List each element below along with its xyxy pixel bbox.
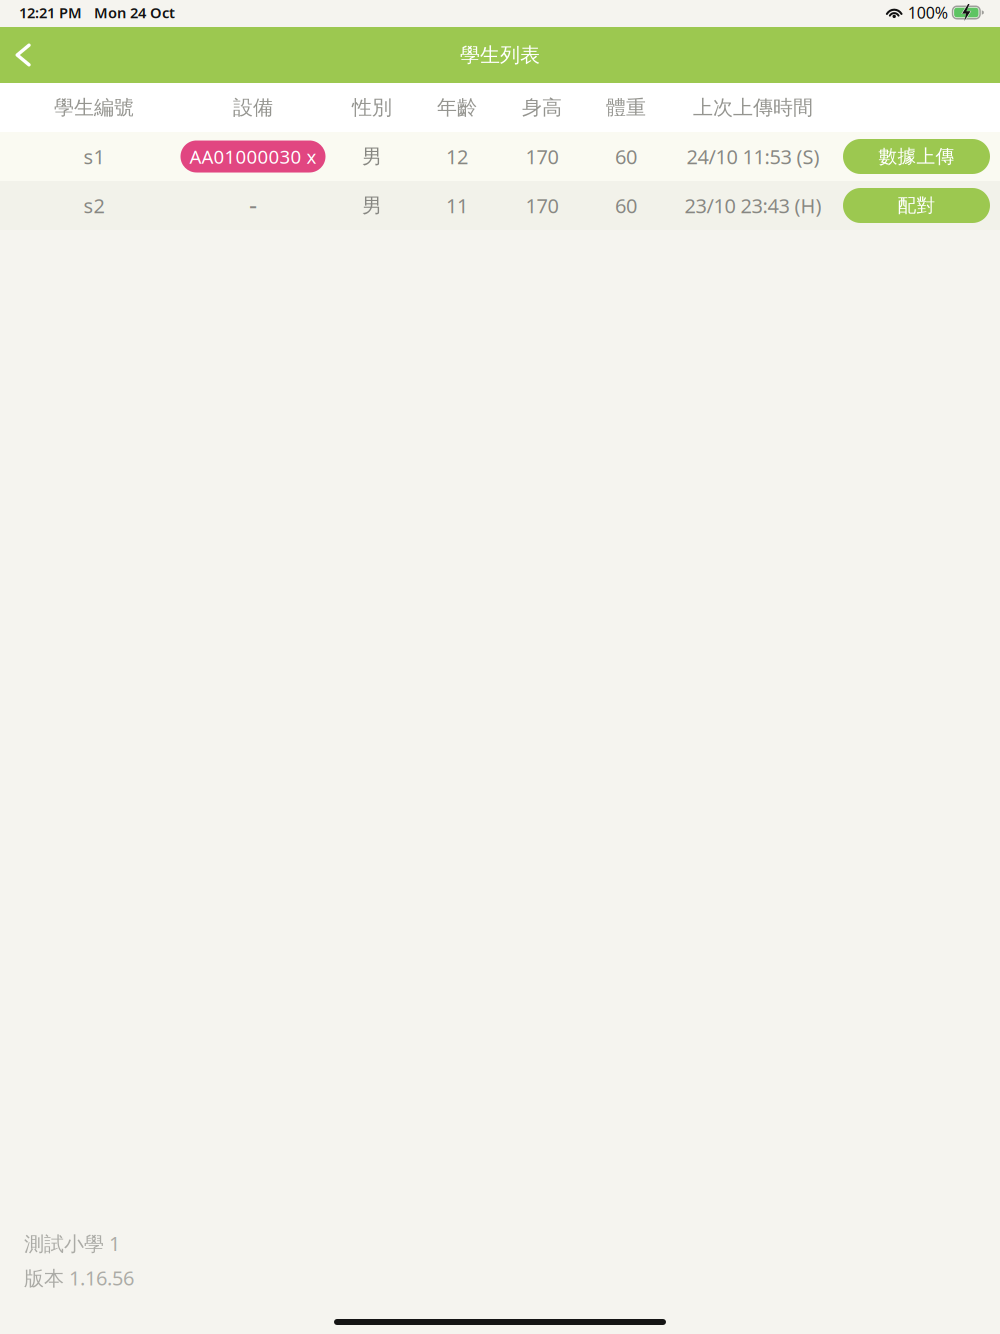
button[interactable]: Back xyxy=(0,27,46,83)
staticText: 23/10 23:43 (H) xyxy=(684,192,821,219)
button[interactable]: 配對 xyxy=(843,188,990,223)
staticText: 版本 1.16.56 xyxy=(24,1264,134,1291)
button[interactable]: AA01000030 x xyxy=(180,140,325,172)
staticText: 170 xyxy=(525,143,558,170)
staticText: 年齡 xyxy=(437,95,477,120)
staticText: - xyxy=(249,188,257,221)
staticText: 性別 xyxy=(352,95,392,120)
staticText: 身高 xyxy=(522,95,562,120)
staticText: s2 xyxy=(83,192,104,219)
staticText: AA01000030 x xyxy=(189,144,316,169)
staticText: 12:21 PM xyxy=(19,3,82,22)
staticText: 配對 xyxy=(897,194,935,217)
staticText: 男 xyxy=(362,144,382,169)
staticText: 學生列表 xyxy=(460,43,540,67)
staticText: 100% xyxy=(908,2,948,23)
button[interactable]: 數據上傳 xyxy=(843,139,990,174)
staticText: 上次上傳時間 xyxy=(693,95,813,120)
staticText: 11 xyxy=(446,192,468,219)
staticText: 60 xyxy=(615,143,637,170)
staticText: 12 xyxy=(446,143,468,170)
staticText: 24/10 11:53 (S) xyxy=(686,143,819,170)
staticText: 60 xyxy=(615,192,637,219)
staticText: 設備 xyxy=(233,95,273,120)
staticText: s1 xyxy=(83,143,104,170)
staticText: 體重 xyxy=(606,95,646,120)
staticText: 學生編號 xyxy=(54,95,134,120)
staticText: Mon 24 Oct xyxy=(94,3,175,22)
staticText: 測試小學 1 xyxy=(24,1230,120,1256)
staticText: 數據上傳 xyxy=(878,145,954,168)
staticText: 170 xyxy=(525,192,558,219)
staticText: 男 xyxy=(362,193,382,218)
